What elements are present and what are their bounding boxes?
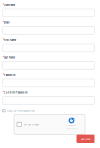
staticText: *: [3, 91, 4, 94]
staticText: *: [3, 38, 4, 42]
staticText: First Name: [4, 38, 16, 42]
button[interactable]: Confirm Password text field: [3, 96, 94, 104]
staticText: reCAPTCHA: [67, 125, 76, 126]
button[interactable]: Email text field: [3, 26, 94, 34]
staticText: Last Name: [4, 56, 15, 59]
button[interactable]: REGISTER: [76, 135, 94, 143]
staticText: Confirm Password: [4, 91, 28, 94]
staticText: *: [3, 3, 4, 7]
staticText: Privacy - Terms: [66, 127, 77, 129]
staticText: Username: [4, 3, 15, 7]
staticText: REGISTER: [81, 137, 90, 140]
staticText: Password: [4, 73, 16, 77]
button[interactable]: Accept our Terms&Conditions: [3, 108, 94, 113]
staticText: I'm not a robot: [24, 123, 39, 126]
button[interactable]: First Name text field: [3, 44, 94, 52]
staticText: *: [3, 73, 4, 77]
button[interactable]: I'm not a robot reCAPTCHA: [14, 114, 85, 134]
staticText: Email: [4, 21, 10, 24]
button[interactable]: Username text field: [3, 9, 94, 17]
staticText: *: [3, 56, 4, 59]
staticText: Accept our Terms&Conditions: [7, 109, 35, 112]
staticText: *: [3, 21, 4, 24]
button[interactable]: Password text field: [3, 79, 94, 87]
